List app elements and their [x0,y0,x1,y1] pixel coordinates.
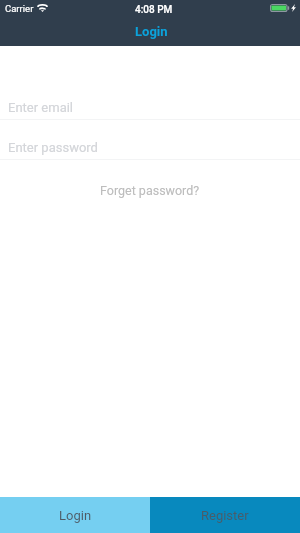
staticText: Login [59,508,92,523]
button[interactable]: Enter email [9,80,300,119]
other: Charging [291,4,296,12]
button[interactable]: Enter password [9,120,300,159]
staticText: Register [201,508,249,523]
staticText: Login [135,24,168,39]
staticText: 4:08 PM [135,4,173,16]
staticText: Forget password? [100,183,200,198]
staticText: Carrier [5,3,34,14]
staticText: Enter email [8,100,74,115]
button[interactable]: Login [0,497,150,533]
other: Battery full [270,4,289,12]
staticText: Enter password [8,140,98,155]
button[interactable]: Register [150,497,300,533]
other: Wi-Fi signal [37,4,48,12]
button[interactable]: Forget password? [0,173,300,198]
